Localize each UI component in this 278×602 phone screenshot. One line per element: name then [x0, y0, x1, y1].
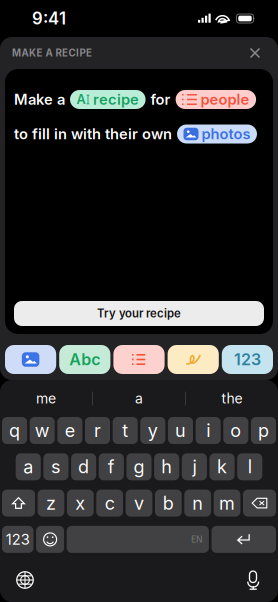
button[interactable]: e	[57, 417, 82, 444]
staticText: for	[151, 91, 171, 108]
staticText: s	[51, 456, 61, 478]
button[interactable]: o	[223, 417, 248, 444]
staticText: n	[192, 492, 203, 514]
staticText: i	[206, 420, 210, 441]
staticText: a	[23, 456, 33, 478]
button[interactable]: Text	[59, 345, 110, 374]
staticText: Make a	[14, 91, 65, 108]
button[interactable]: h	[154, 453, 179, 480]
staticText: recipe	[93, 91, 139, 108]
button[interactable]: Shift	[2, 490, 35, 517]
staticText: photos	[201, 125, 250, 143]
button[interactable]: f	[99, 453, 124, 480]
staticText: h	[161, 456, 172, 478]
staticText: k	[217, 456, 227, 478]
button[interactable]: Numbers	[2, 526, 33, 553]
button[interactable]: g	[126, 453, 152, 480]
staticText: x	[75, 492, 85, 514]
staticText: me	[36, 390, 56, 407]
button[interactable]: n	[184, 490, 211, 517]
button[interactable]: Try your recipe	[14, 301, 264, 326]
staticText: e	[65, 420, 75, 441]
staticText: c	[105, 492, 115, 514]
staticText: 9:41	[32, 8, 66, 29]
button[interactable]: Return	[211, 526, 276, 553]
button[interactable]: v	[126, 490, 152, 517]
staticText: u	[175, 420, 186, 441]
button[interactable]: r	[85, 417, 110, 444]
button[interactable]: space	[67, 526, 209, 553]
button[interactable]: q	[2, 417, 27, 444]
staticText: l	[248, 456, 252, 478]
button[interactable]: j	[182, 453, 207, 480]
button[interactable]: w	[30, 417, 55, 444]
staticText: d	[78, 456, 89, 478]
staticText: p	[258, 420, 269, 441]
staticText: MAKE A RECIPE	[12, 47, 92, 59]
staticText: q	[9, 420, 20, 441]
button[interactable]: x	[67, 490, 94, 517]
staticText: j	[192, 456, 196, 478]
button[interactable]: b	[155, 490, 182, 517]
button[interactable]: l	[237, 453, 262, 480]
button[interactable]: Emoji	[36, 526, 64, 553]
button[interactable]: List	[113, 345, 165, 374]
button[interactable]: Photo	[5, 345, 56, 374]
button[interactable]: k	[209, 453, 235, 480]
staticText: Abc	[69, 350, 100, 369]
button[interactable]: d	[71, 453, 96, 480]
staticText: to fill in with their own	[14, 125, 172, 143]
button[interactable]: Next keyboard	[8, 563, 42, 597]
staticText: z	[46, 492, 56, 514]
button[interactable]: Close	[243, 41, 267, 65]
button[interactable]: p	[251, 417, 276, 444]
staticText: m	[219, 492, 235, 514]
staticText: w	[35, 420, 50, 441]
staticText: the	[221, 390, 242, 407]
staticText: EN	[191, 534, 203, 545]
staticText: o	[230, 420, 241, 441]
staticText: 123	[6, 530, 30, 548]
staticText: r	[94, 420, 101, 441]
button[interactable]: the	[186, 383, 278, 413]
staticText: 123	[234, 350, 261, 369]
staticText: A	[76, 92, 85, 107]
button[interactable]: z	[38, 490, 64, 517]
staticText: f	[108, 456, 115, 478]
staticText: Try your recipe	[97, 307, 181, 320]
staticText: g	[133, 456, 144, 478]
staticText: people	[201, 91, 250, 108]
button[interactable]: c	[96, 490, 123, 517]
button[interactable]: a	[93, 383, 185, 413]
button[interactable]: Dictation	[236, 563, 270, 597]
button[interactable]: Delete	[243, 490, 276, 517]
button[interactable]: me	[0, 383, 92, 413]
button[interactable]: a	[16, 453, 41, 480]
button[interactable]: t	[113, 417, 138, 444]
button[interactable]: u	[168, 417, 193, 444]
button[interactable]: m	[214, 490, 240, 517]
staticText: y	[148, 420, 158, 441]
staticText: v	[134, 492, 144, 514]
staticText: a	[135, 390, 143, 407]
staticText: b	[163, 492, 174, 514]
button[interactable]: Number	[222, 345, 273, 374]
staticText: t	[122, 420, 128, 441]
button[interactable]: s	[43, 453, 68, 480]
button[interactable]: i	[196, 417, 221, 444]
button[interactable]: y	[140, 417, 165, 444]
button[interactable]: Drawing	[168, 345, 219, 374]
